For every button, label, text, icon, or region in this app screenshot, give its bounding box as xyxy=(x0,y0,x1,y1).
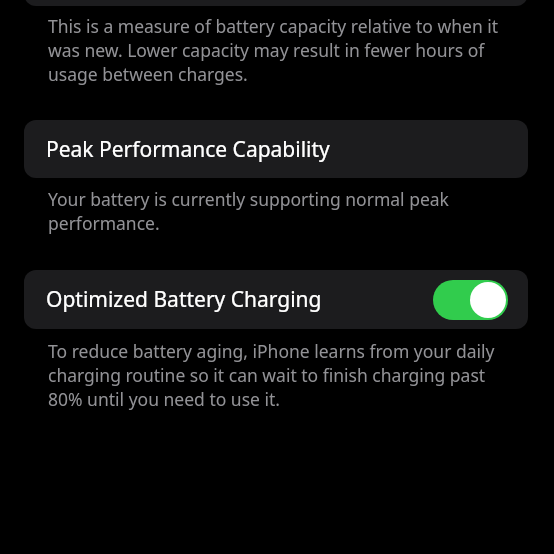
button[interactable]: Optimized Battery Charging xyxy=(24,270,528,329)
staticText: Your battery is currently supporting nor… xyxy=(48,187,468,235)
button[interactable]: Optimized Battery Charging toggle xyxy=(433,280,508,320)
button[interactable] xyxy=(24,0,528,6)
staticText: To reduce battery aging, iPhone learns f… xyxy=(48,339,508,411)
staticText: Optimized Battery Charging xyxy=(46,285,322,314)
staticText: This is a measure of battery capacity re… xyxy=(48,14,510,86)
button[interactable]: Peak Performance Capability xyxy=(24,120,528,178)
staticText: Peak Performance Capability xyxy=(46,135,330,164)
